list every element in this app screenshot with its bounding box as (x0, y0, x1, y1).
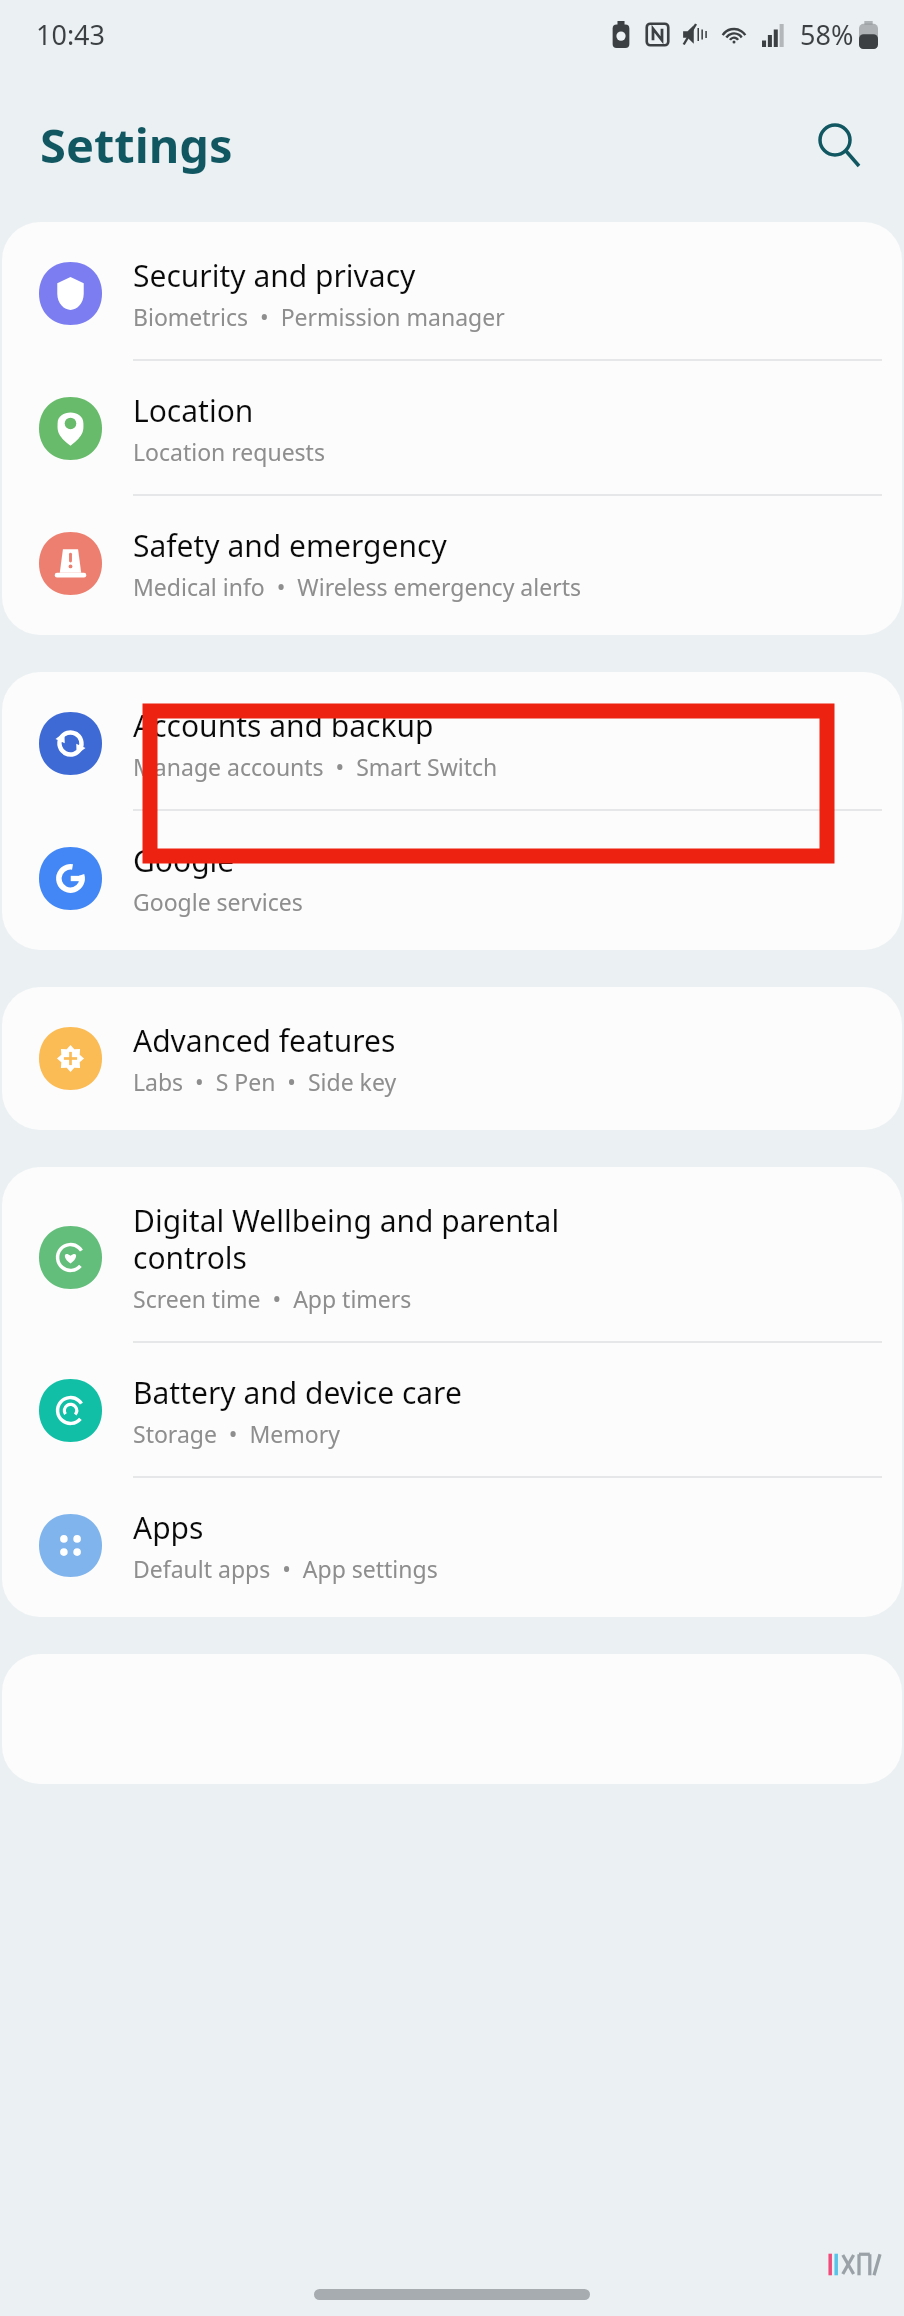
staticText: Medical info • Wireless emergency alerts (133, 571, 581, 602)
button[interactable]: Search (804, 110, 874, 180)
staticText: Advanced features (133, 1020, 396, 1061)
staticText: Manage accounts • Smart Switch (133, 751, 498, 782)
button[interactable]: Location (2, 361, 902, 494)
button[interactable]: Digital Wellbeing and parental controls (2, 1167, 902, 1341)
staticText: 58% (800, 16, 854, 53)
staticText: Default apps • App settings (133, 1553, 438, 1584)
staticText: Safety and emergency (133, 525, 447, 566)
button[interactable]: Battery and device care (2, 1343, 902, 1476)
staticText: Google services (133, 886, 303, 917)
button[interactable]: Advanced features (2, 987, 902, 1130)
staticText: Accounts and backup (133, 705, 434, 746)
staticText: Apps (133, 1507, 204, 1548)
staticText: Digital Wellbeing and parental controls (133, 1200, 560, 1278)
staticText: Security and privacy (133, 255, 416, 296)
staticText: Biometrics • Permission manager (133, 301, 505, 332)
button[interactable]: Safety and emergency (2, 496, 902, 635)
button[interactable]: Google (2, 811, 902, 950)
staticText: Screen time • App timers (133, 1283, 412, 1314)
staticText: Storage • Memory (133, 1418, 340, 1449)
staticText: Settings (40, 113, 233, 177)
button[interactable]: Apps (2, 1478, 902, 1617)
button[interactable]: Accounts and backup (2, 672, 902, 809)
staticText: Battery and device care (133, 1372, 462, 1413)
staticText: Labs • S Pen • Side key (133, 1066, 397, 1097)
staticText: 10:43 (36, 16, 106, 53)
staticText: Location (133, 390, 254, 431)
staticText: Google (133, 840, 235, 881)
staticText: Location requests (133, 436, 325, 467)
button[interactable]: Security and privacy (2, 222, 902, 359)
